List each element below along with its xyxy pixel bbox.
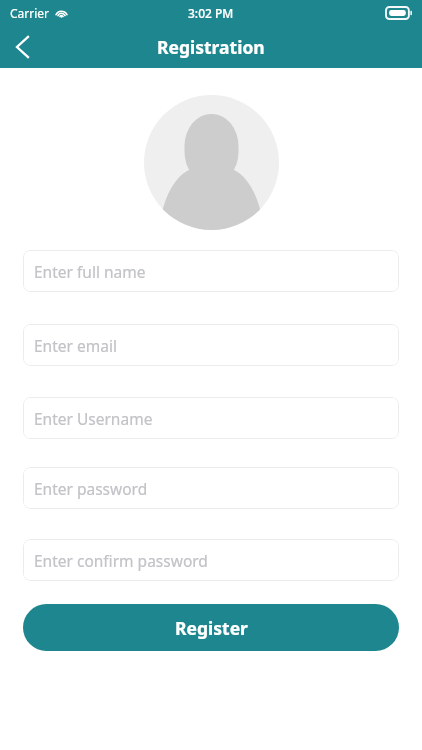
button[interactable]: Register [23, 604, 399, 651]
staticText: Registration [157, 35, 265, 59]
staticText: Enter confirm password [34, 550, 208, 571]
staticText: Carrier [10, 5, 50, 21]
staticText: Enter password [34, 478, 148, 499]
button[interactable]: Enter Username [23, 397, 399, 439]
button[interactable]: Enter full name [23, 250, 399, 292]
button[interactable]: Enter password [23, 467, 399, 509]
staticText: 3:02 PM [188, 5, 234, 21]
button[interactable]: Back [0, 26, 44, 68]
staticText: Enter email [34, 335, 117, 356]
staticText: Register [175, 616, 248, 640]
staticText: Enter full name [34, 261, 146, 282]
button[interactable]: Enter email [23, 324, 399, 366]
staticText: Enter Username [34, 408, 153, 429]
button[interactable]: Enter confirm password [23, 539, 399, 581]
